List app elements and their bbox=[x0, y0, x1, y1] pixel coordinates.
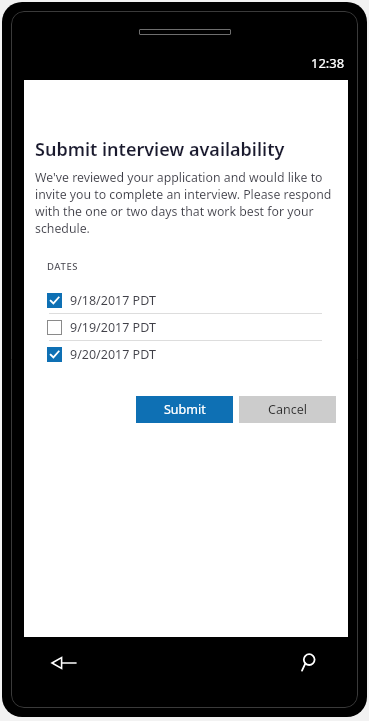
staticText: We've reviewed your application and woul… bbox=[35, 169, 337, 237]
button[interactable]: Cancel bbox=[239, 396, 336, 423]
staticText: 9/19/2017 PDT bbox=[70, 319, 156, 336]
button[interactable]: 9/18/2017 PDT bbox=[24, 287, 348, 313]
staticText: DATES bbox=[47, 260, 79, 273]
button[interactable]: 9/20/2017 PDT bbox=[24, 341, 348, 367]
staticText: 12:38 bbox=[311, 54, 345, 72]
button[interactable]: Submit bbox=[136, 396, 233, 423]
staticText: Submit interview availability bbox=[35, 137, 285, 162]
staticText: Submit bbox=[164, 401, 206, 418]
staticText: 9/20/2017 PDT bbox=[70, 346, 156, 363]
button[interactable]: Search bbox=[286, 645, 330, 681]
staticText: 9/18/2017 PDT bbox=[70, 292, 156, 309]
button[interactable]: Back bbox=[42, 645, 86, 681]
button[interactable]: 9/19/2017 PDT bbox=[24, 314, 348, 340]
staticText: Cancel bbox=[268, 401, 307, 418]
